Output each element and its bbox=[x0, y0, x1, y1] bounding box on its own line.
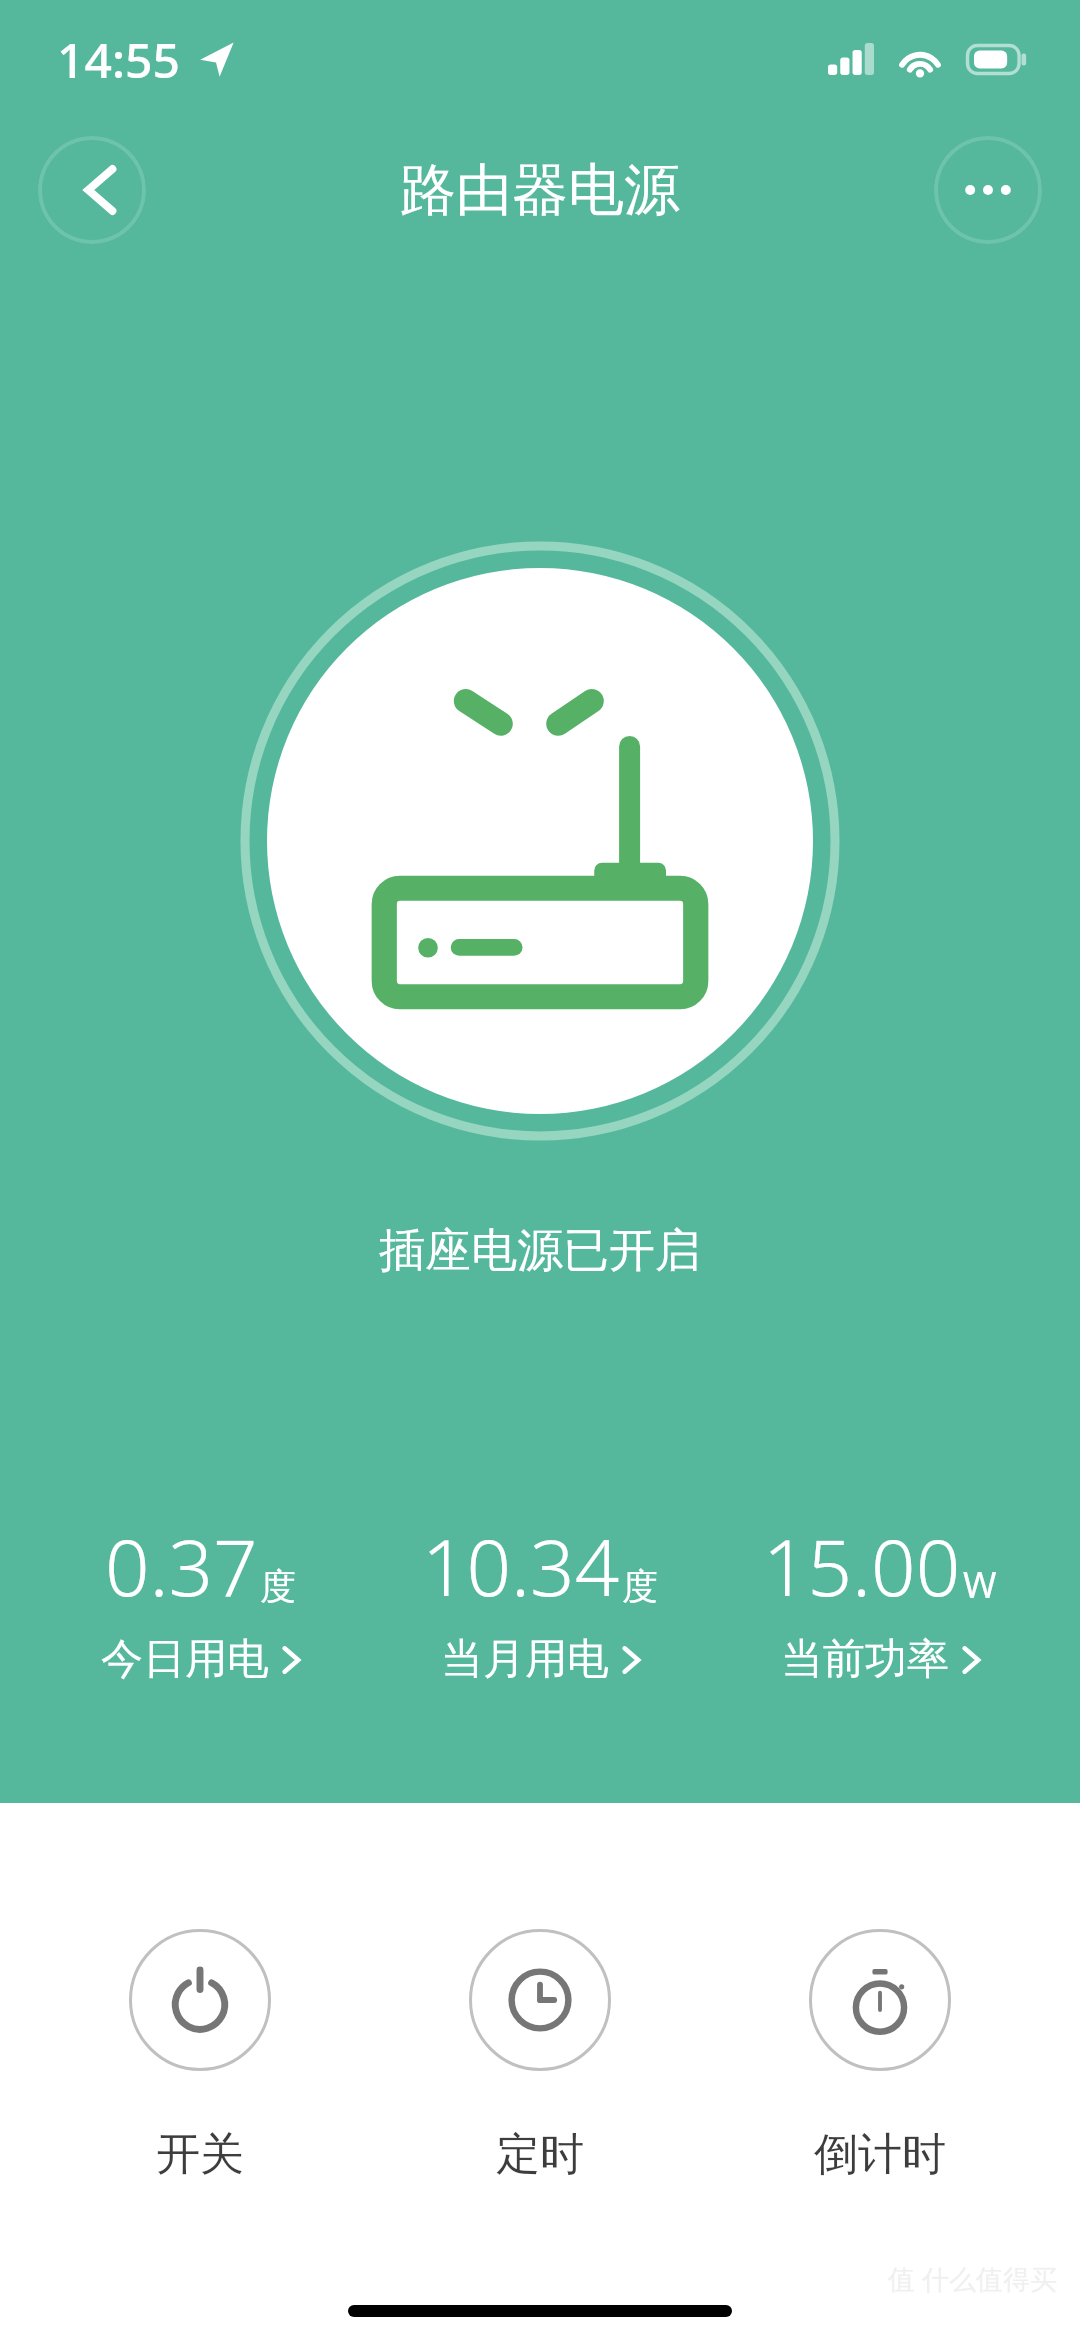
button[interactable]: 定时 bbox=[370, 1803, 710, 2182]
staticText: 插座电源已开启 bbox=[379, 1222, 701, 1280]
button[interactable]: 倒计时 bbox=[710, 1803, 1050, 2182]
staticText: 开关 bbox=[156, 2127, 244, 2182]
staticText: 15.00 bbox=[763, 1513, 961, 1619]
button[interactable]: More options bbox=[934, 136, 1042, 244]
staticText: 路由器电源 bbox=[400, 155, 680, 226]
button[interactable]: 15.00 bbox=[710, 1513, 1050, 1686]
staticText: 10.34 bbox=[422, 1513, 620, 1619]
staticText: 当前功率 bbox=[781, 1633, 949, 1686]
staticText: 当月用电 bbox=[441, 1633, 609, 1686]
button[interactable]: 开关 bbox=[30, 1803, 370, 2182]
button[interactable]: 10.34 bbox=[370, 1513, 710, 1686]
staticText: 定时 bbox=[496, 2127, 584, 2182]
staticText: 倒计时 bbox=[814, 2127, 946, 2182]
button[interactable]: 0.37 bbox=[30, 1513, 370, 1686]
staticText: 今日用电 bbox=[101, 1633, 269, 1686]
staticText: 0.37 bbox=[105, 1513, 258, 1619]
staticText: 度 bbox=[260, 1564, 296, 1609]
staticText: 14:55 bbox=[57, 27, 180, 92]
staticText: 值 什么值得买 bbox=[888, 2260, 1058, 2297]
staticText: 度 bbox=[622, 1564, 658, 1609]
button[interactable]: Back bbox=[38, 136, 146, 244]
staticText: W bbox=[963, 1560, 997, 1609]
